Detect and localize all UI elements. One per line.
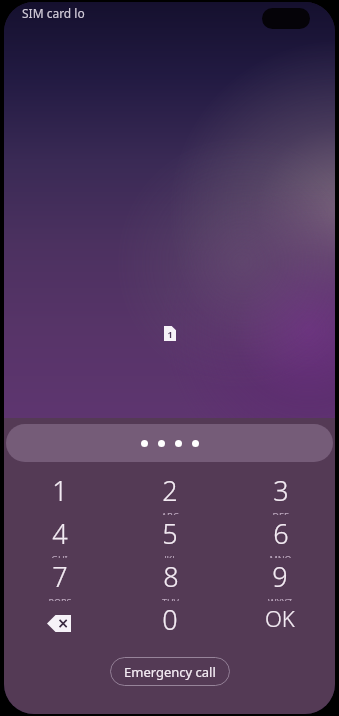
- staticText: 8: [163, 558, 179, 595]
- button[interactable]: 1: [4, 472, 115, 515]
- staticText: WXYZ: [268, 596, 292, 601]
- button[interactable]: 9: [225, 558, 335, 601]
- staticText: Emergency call: [124, 663, 216, 681]
- button[interactable]: [6, 424, 333, 462]
- button[interactable]: 2: [115, 472, 225, 515]
- staticText: 1: [52, 472, 68, 509]
- button[interactable]: 3: [225, 472, 335, 515]
- staticText: SIM card lo: [22, 5, 85, 21]
- staticText: JKL: [164, 553, 177, 558]
- button[interactable]: 0: [115, 601, 225, 645]
- staticText: 9: [272, 558, 288, 595]
- staticText: 2: [162, 472, 178, 509]
- staticText: 6: [273, 515, 289, 552]
- button[interactable]: Backspace: [4, 601, 115, 645]
- staticText: 7: [52, 558, 68, 595]
- staticText: OK: [265, 603, 295, 633]
- staticText: PQRS: [48, 596, 72, 601]
- staticText: ABC: [161, 510, 179, 515]
- staticText: GHI: [51, 553, 68, 558]
- staticText: 1: [167, 328, 173, 340]
- staticText: DEF: [272, 510, 289, 515]
- staticText: MNO: [269, 553, 292, 558]
- staticText: 4: [52, 515, 68, 552]
- button[interactable]: 6: [225, 515, 335, 558]
- staticText: TUV: [162, 596, 179, 601]
- button[interactable]: Emergency call: [110, 657, 230, 686]
- button[interactable]: 5: [115, 515, 225, 558]
- button[interactable]: 8: [115, 558, 225, 601]
- button[interactable]: OK: [225, 601, 335, 645]
- staticText: 0: [162, 601, 178, 638]
- staticText: 3: [273, 472, 289, 509]
- button[interactable]: 4: [4, 515, 115, 558]
- staticText: 5: [162, 515, 178, 552]
- button[interactable]: 7: [4, 558, 115, 601]
